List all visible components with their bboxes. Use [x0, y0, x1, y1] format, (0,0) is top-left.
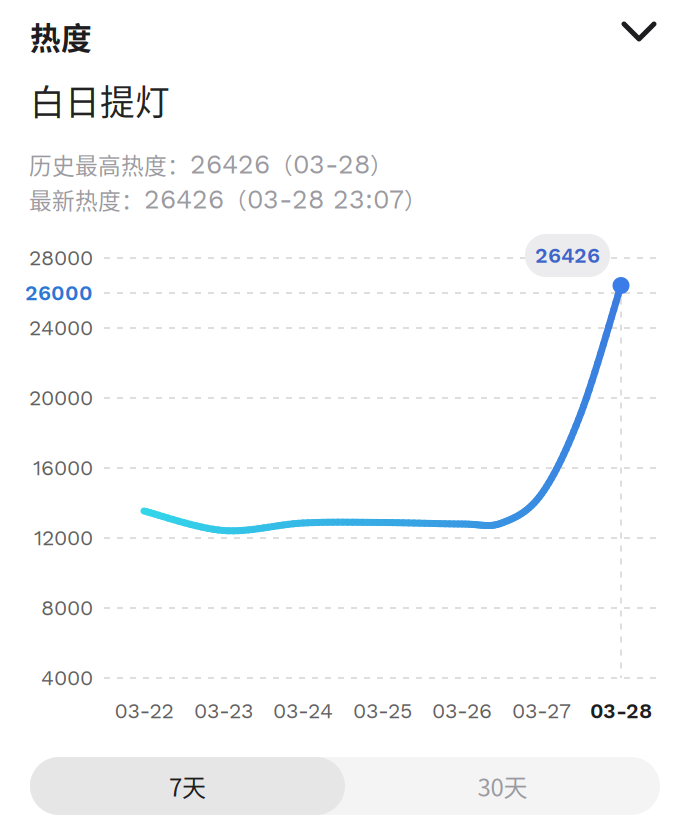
staticText: 7天 [169, 769, 206, 803]
staticText: 28000 [29, 245, 93, 270]
staticText: 24000 [29, 315, 93, 340]
staticText: 白日提灯 [30, 75, 170, 125]
staticText: ） [370, 148, 393, 181]
staticText: 03-25 [353, 698, 412, 723]
staticText: 30天 [477, 769, 527, 803]
staticText: 12000 [34, 525, 93, 550]
staticText: 20000 [29, 385, 93, 410]
staticText: 16000 [33, 455, 93, 480]
button[interactable]: 7天 [30, 757, 345, 815]
staticText: （ [270, 148, 293, 181]
staticText: 26000 [25, 280, 93, 305]
staticText: 8000 [41, 595, 93, 620]
staticText: 03-23 [194, 698, 253, 723]
staticText: 最新热度： [29, 183, 144, 216]
button[interactable]: 30天 [345, 757, 660, 815]
staticText: 03-27 [512, 698, 571, 723]
staticText: 03-28 [293, 149, 370, 180]
staticText: 热度 [30, 14, 92, 58]
button[interactable]: Collapse [614, 8, 664, 54]
staticText: ） [404, 183, 427, 216]
staticText: 历史最高热度： [29, 148, 190, 181]
staticText: 03-28 [590, 698, 652, 723]
staticText: 26426 [535, 243, 600, 268]
staticText: 03-28 23:07 [247, 184, 404, 215]
staticText: 26426 [144, 184, 224, 215]
staticText: 03-24 [273, 698, 333, 723]
staticText: 4000 [41, 665, 93, 690]
staticText: 26426 [190, 149, 270, 180]
staticText: 03-22 [114, 698, 173, 723]
staticText: （ [224, 183, 247, 216]
staticText: 03-26 [432, 698, 492, 723]
